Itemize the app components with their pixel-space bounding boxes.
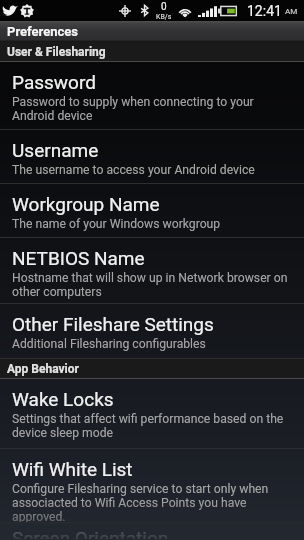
staticText: Hostname that will show up in Network br… xyxy=(12,271,292,299)
staticText: App Behavior xyxy=(7,362,79,376)
staticText: 12:41 xyxy=(247,3,282,19)
button[interactable]: Wifi White List xyxy=(0,449,304,523)
staticText: Workgroup Name xyxy=(12,193,160,215)
staticText: The name of your Windows workgroup xyxy=(12,217,221,231)
button[interactable]: NETBIOS Name xyxy=(0,238,304,304)
staticText: AM xyxy=(285,7,298,16)
button[interactable]: Workgroup Name xyxy=(0,184,304,238)
staticText: Settings that affect wifi performance ba… xyxy=(12,412,292,440)
staticText: NETBIOS Name xyxy=(12,247,145,269)
button[interactable]: Other Fileshare Settings xyxy=(0,304,304,359)
staticText: 0 xyxy=(161,1,167,13)
button[interactable]: Password xyxy=(0,62,304,130)
staticText: Wake Locks xyxy=(12,388,114,410)
staticText: Preferences xyxy=(7,24,79,39)
button[interactable]: Username xyxy=(0,130,304,184)
button[interactable]: Screen Orientation xyxy=(0,523,304,540)
button[interactable]: Wake Locks xyxy=(0,379,304,449)
staticText: Username xyxy=(12,139,99,161)
staticText: Password xyxy=(12,71,96,93)
staticText: Other Fileshare Settings xyxy=(12,313,214,335)
staticText: Configure Filesharing service to start o… xyxy=(12,482,292,522)
staticText: Password to supply when connecting to yo… xyxy=(12,95,292,123)
staticText: Screen Orientation xyxy=(12,527,169,539)
staticText: Additional Filesharing configurables xyxy=(12,337,206,351)
staticText: The username to access your Android devi… xyxy=(12,163,255,177)
staticText: KB/s xyxy=(156,13,172,21)
staticText: Wifi White List xyxy=(12,458,133,480)
staticText: User & Filesharing xyxy=(7,45,106,59)
